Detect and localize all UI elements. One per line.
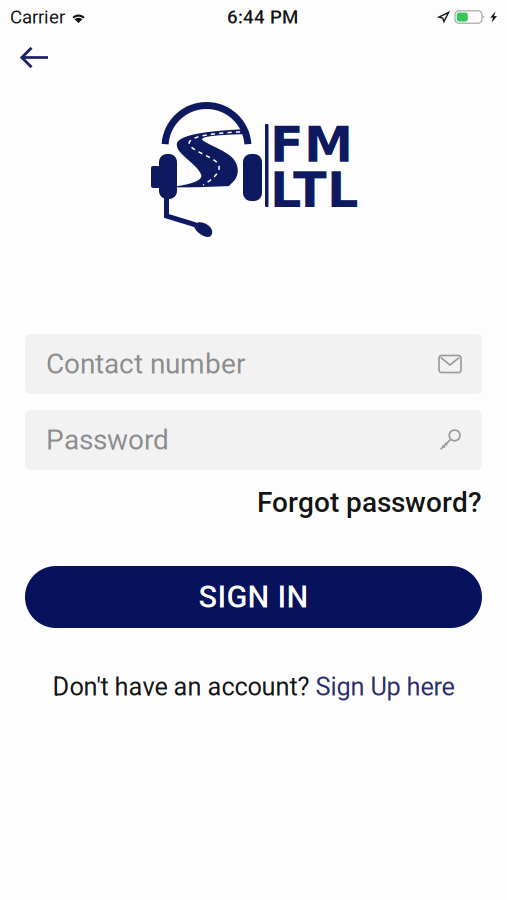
staticText: Forgot password? [257,486,482,519]
button[interactable]: SIGN IN [25,566,482,628]
button[interactable]: Sign Up here [315,672,454,702]
staticText: Don't have an account? [52,672,315,702]
staticText: 6:44 PM [227,6,298,28]
button[interactable]: Forgot password? [257,486,482,519]
staticText: Password [46,424,169,456]
staticText: LTL [270,161,358,219]
staticText: Sign Up here [315,672,454,702]
button[interactable]: Contact number [25,334,482,394]
staticText: SIGN IN [198,579,308,615]
staticText: Carrier [10,6,65,28]
staticText: Contact number [46,348,245,380]
staticText: FM [270,116,353,173]
button[interactable]: Back [2,33,67,82]
button[interactable]: Password [25,410,482,470]
